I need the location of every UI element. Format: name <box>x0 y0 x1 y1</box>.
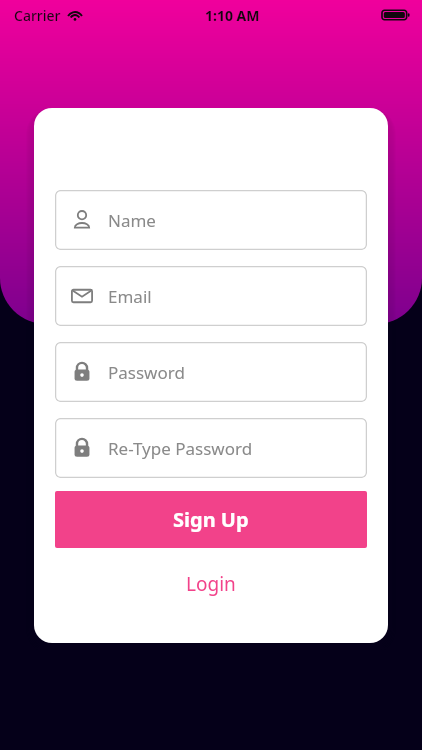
staticText: Carrier <box>14 6 61 25</box>
button[interactable]: Login <box>34 564 388 604</box>
staticText: Sign Up <box>173 506 249 533</box>
staticText: Email <box>108 285 152 308</box>
staticText: Name <box>108 209 156 232</box>
staticText: Login <box>186 571 236 597</box>
staticText: Password <box>108 361 185 384</box>
button[interactable]: Password <box>55 342 367 402</box>
button[interactable]: Email <box>55 266 367 326</box>
button[interactable]: Sign Up <box>55 491 367 548</box>
other: Battery <box>382 8 410 22</box>
staticText: Re-Type Password <box>108 437 253 460</box>
staticText: 1:10 AM <box>205 6 260 25</box>
button[interactable]: Re-Type Password <box>55 418 367 478</box>
button[interactable]: Name <box>55 190 367 250</box>
